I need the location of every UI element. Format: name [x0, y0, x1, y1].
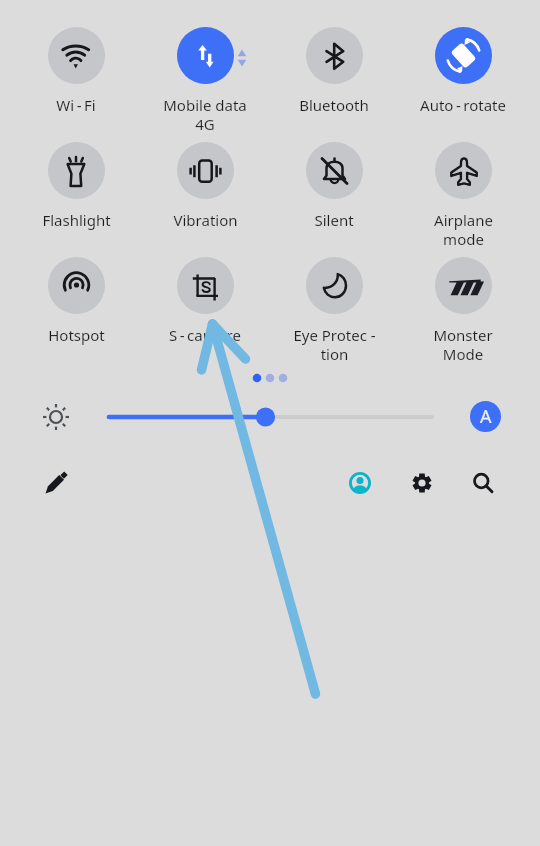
button[interactable]: [306, 27, 363, 84]
staticText: Mobile data 4G: [163, 95, 247, 134]
button[interactable]: [435, 27, 492, 84]
button[interactable]: A: [470, 401, 501, 432]
staticText: Vibration: [173, 210, 238, 230]
staticText: Silent: [314, 210, 354, 230]
staticText: Hotspot: [48, 325, 105, 345]
button[interactable]: [435, 142, 492, 199]
button[interactable]: [48, 27, 105, 84]
button[interactable]: [306, 142, 363, 199]
staticText: A: [480, 404, 492, 429]
staticText: S - capture: [169, 325, 241, 345]
staticText: Airplane mode: [434, 210, 493, 249]
staticText: Flashlight: [42, 210, 111, 230]
button[interactable]: Search: [463, 463, 499, 499]
staticText: Monster Mode: [433, 325, 493, 364]
button[interactable]: [177, 27, 234, 84]
staticText: Wi - Fi: [56, 95, 96, 115]
button[interactable]: [435, 257, 492, 314]
button[interactable]: [306, 257, 363, 314]
staticText: Bluetooth: [299, 95, 369, 115]
button[interactable]: [48, 257, 105, 314]
button[interactable]: [177, 257, 234, 314]
staticText: Eye Protec - tion: [293, 325, 376, 364]
button[interactable]: Edit: [38, 465, 74, 501]
button[interactable]: Account: [342, 465, 378, 501]
staticText: Auto - rotate: [420, 95, 506, 115]
button[interactable]: Settings: [404, 465, 440, 501]
button[interactable]: [177, 142, 234, 199]
button[interactable]: [48, 142, 105, 199]
